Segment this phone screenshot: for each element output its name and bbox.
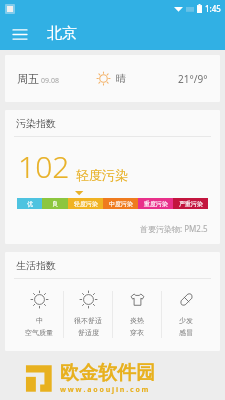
staticText: 09.08 — [41, 76, 59, 86]
staticText: 穿衣 — [130, 328, 144, 337]
staticText: 周五 — [17, 72, 39, 86]
staticText: 生活指数 — [16, 259, 56, 272]
staticText: 良 — [52, 200, 58, 208]
staticText: 感冒 — [179, 328, 193, 337]
button[interactable]: 少发 — [162, 288, 210, 341]
button[interactable]: 很不舒适 — [64, 288, 112, 341]
button[interactable]: Open navigation menu — [7, 21, 33, 47]
staticText: 很不舒适 — [74, 316, 102, 325]
staticText: 1:45 — [205, 3, 221, 14]
staticText: 严重污染 — [179, 200, 203, 208]
staticText: 优 — [27, 200, 33, 208]
staticText: 轻度污染 — [76, 167, 128, 183]
button[interactable]: 炎热 — [113, 288, 161, 341]
staticText: 中 — [36, 316, 43, 325]
staticText: 晴 — [116, 72, 126, 85]
staticText: 重度污染 — [144, 200, 168, 208]
staticText: w w w . a o o u j i n . c o m — [60, 385, 149, 395]
staticText: 少发 — [179, 316, 193, 325]
staticText: 空气质量 — [25, 328, 53, 337]
staticText: 炎热 — [130, 316, 144, 325]
button[interactable]: 中 — [15, 288, 63, 341]
staticText: 首要污染物: PM2.5 — [140, 223, 208, 234]
staticText: 欧金软件园 — [60, 361, 155, 385]
staticText: 轻度污染 — [74, 200, 98, 208]
staticText: 舒适度 — [78, 328, 99, 337]
staticText: 21°/9° — [178, 72, 208, 86]
staticText: 污染指数 — [16, 117, 56, 130]
staticText: 中度污染 — [109, 200, 133, 208]
staticText: 102 — [18, 146, 70, 187]
staticText: 北京 — [47, 24, 77, 43]
button[interactable]: 周五 — [5, 55, 220, 102]
